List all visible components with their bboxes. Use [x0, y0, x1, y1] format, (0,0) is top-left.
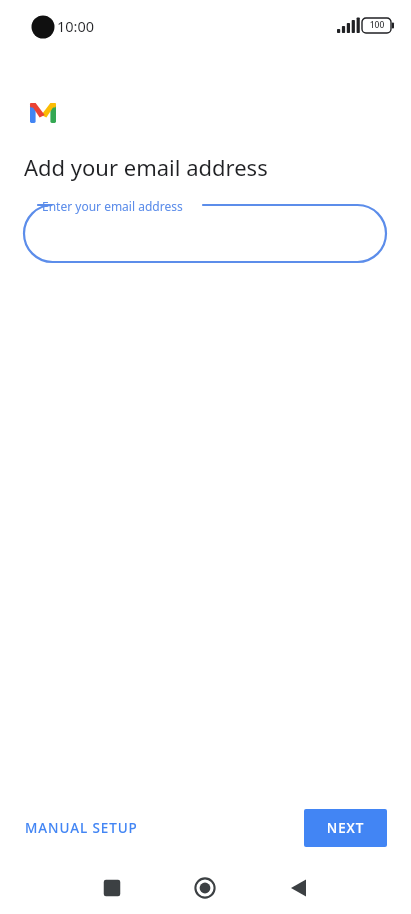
staticText: Add your email address: [24, 152, 268, 182]
button[interactable]: Recent apps: [88, 864, 136, 912]
button[interactable]: MANUAL SETUP: [16, 809, 156, 847]
button[interactable]: NEXT: [304, 809, 387, 847]
staticText: NEXT: [304, 819, 387, 837]
staticText: Enter your email address: [42, 198, 183, 214]
button[interactable]: Enter your email address: [24, 205, 386, 262]
button[interactable]: Home: [181, 864, 229, 912]
staticText: 100: [364, 19, 390, 32]
staticText: 10:00: [57, 16, 95, 36]
staticText: MANUAL SETUP: [25, 819, 138, 837]
button[interactable]: Back: [275, 864, 323, 912]
